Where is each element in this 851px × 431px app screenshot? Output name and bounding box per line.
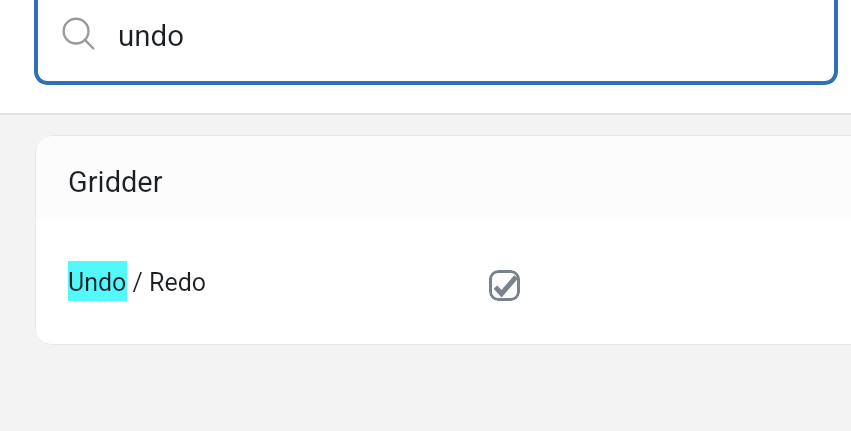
other: Search [60,17,98,55]
staticText: undo [118,19,185,54]
button[interactable]: Toggle Undo / Redo [489,270,520,301]
staticText: Undo / Redo [68,268,207,297]
button[interactable]: Search [34,0,838,85]
staticText: Gridder [68,165,163,199]
button[interactable]: Undo / Redo [35,220,851,344]
